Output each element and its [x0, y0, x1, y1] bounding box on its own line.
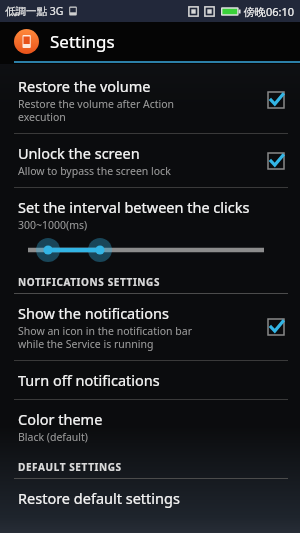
button[interactable]: Restore the volume [0, 67, 300, 133]
button[interactable]: Toggle setting [266, 90, 286, 110]
button[interactable]: Set the interval between the clicks [0, 188, 300, 268]
button[interactable]: Restore default settings [0, 479, 300, 517]
staticText: Settings [50, 30, 115, 53]
staticText: Show the notifications [18, 303, 169, 323]
staticText: Allow to bypass the screen lock [18, 164, 171, 178]
staticText: 低調一點 3G [5, 4, 64, 18]
staticText: Black (default) [18, 430, 88, 444]
staticText: Turn off notifications [18, 370, 160, 390]
button[interactable]: Unlock the screen [0, 134, 300, 187]
staticText: 傍晚06:10 [244, 4, 295, 19]
button[interactable]: Toggle setting [266, 151, 286, 171]
button[interactable]: Turn off notifications [0, 361, 300, 399]
staticText: 300~1000(ms) [18, 218, 88, 232]
button[interactable]: Toggle setting [266, 317, 286, 337]
staticText: Set the interval between the clicks [18, 197, 250, 217]
staticText: Color theme [18, 409, 103, 429]
staticText: DEFAULT SETTINGS [18, 460, 122, 474]
staticText: Show an icon in the notification bar whi… [18, 324, 193, 351]
button[interactable]: Show the notifications [0, 294, 300, 360]
staticText: Restore default settings [18, 488, 180, 508]
staticText: Restore the volume [18, 76, 151, 96]
staticText: Unlock the screen [18, 143, 140, 163]
button[interactable]: Settings [0, 22, 300, 61]
staticText: Restore the volume after Action executio… [18, 97, 175, 124]
button[interactable]: Color theme [0, 400, 300, 453]
staticText: NOTIFICATIONS SETTINGS [18, 275, 161, 289]
